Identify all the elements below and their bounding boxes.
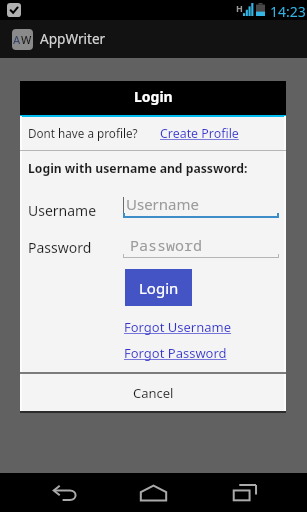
button[interactable]: Back <box>41 473 89 512</box>
staticText: AppWriter <box>40 29 106 48</box>
button[interactable]: Cancel <box>20 374 286 411</box>
staticText: Login with username and password: <box>28 160 248 177</box>
staticText: H <box>236 2 243 14</box>
staticText: Login <box>134 87 173 106</box>
staticText: Create Profile <box>160 125 239 142</box>
button[interactable]: Create Profile <box>160 125 239 142</box>
staticText: Password <box>130 235 203 255</box>
button[interactable]: Home <box>129 473 177 512</box>
staticText: 14:23 <box>270 2 306 21</box>
staticText: W <box>21 32 32 47</box>
staticText: Username <box>126 194 199 214</box>
staticText: Forgot Username <box>124 318 232 336</box>
button[interactable]: Forgot Username <box>124 318 232 336</box>
staticText: Login <box>139 278 179 298</box>
button[interactable]: Forgot Password <box>124 344 227 362</box>
staticText: Cancel <box>133 384 174 402</box>
staticText: A <box>13 32 21 47</box>
staticText: Forgot Password <box>124 344 227 362</box>
button[interactable]: Recent apps <box>221 473 269 512</box>
staticText: Password <box>28 238 92 257</box>
staticText: Username <box>28 201 97 220</box>
staticText: Dont have a profile? <box>28 125 138 141</box>
button[interactable]: Login <box>125 269 192 306</box>
